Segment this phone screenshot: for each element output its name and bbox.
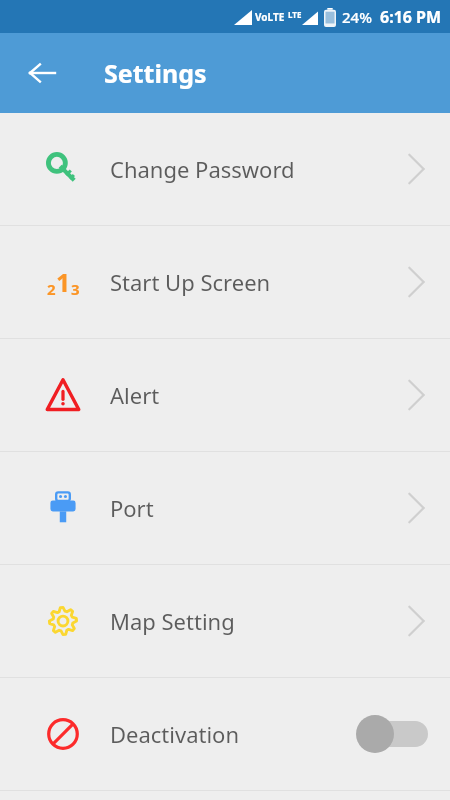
button[interactable]: Change Password <box>0 113 450 225</box>
staticText: Settings <box>104 56 207 90</box>
staticText: Start Up Screen <box>110 267 271 297</box>
staticText: 2 <box>47 279 56 299</box>
button[interactable]: Map Setting <box>0 565 450 677</box>
button[interactable]: Back <box>16 47 68 99</box>
staticText: LTE <box>288 9 302 20</box>
staticText: VoLTE <box>255 10 285 24</box>
staticText: 1 <box>56 265 71 299</box>
button[interactable]: Alert <box>0 339 450 451</box>
staticText: Change Password <box>110 154 295 184</box>
staticText: Map Setting <box>110 606 235 636</box>
button[interactable]: Deactivation <box>0 678 450 790</box>
staticText: Deactivation <box>110 719 240 749</box>
staticText: 24% <box>342 7 372 27</box>
staticText: Alert <box>110 380 160 410</box>
staticText: Port <box>110 493 154 523</box>
staticText: 6:16 PM <box>380 6 442 28</box>
staticText: 3 <box>71 279 80 299</box>
button[interactable]: Deactivation toggle, off <box>356 713 428 755</box>
button[interactable]: Port <box>0 452 450 564</box>
button[interactable]: 2 <box>0 226 450 338</box>
